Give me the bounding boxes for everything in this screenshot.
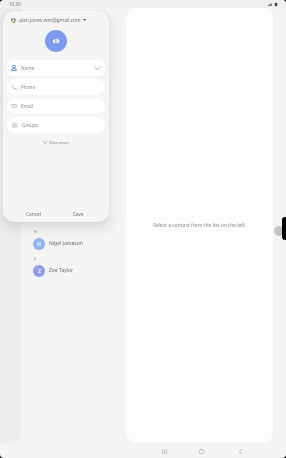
button[interactable]: Groups	[7, 117, 105, 133]
staticText: alan.jones.wm@gmail.com	[19, 17, 81, 24]
staticText: 10.30	[9, 1, 21, 7]
button[interactable]: alan.jones.wm@gmail.com	[3, 11, 109, 29]
button[interactable]: Phone	[7, 79, 105, 95]
button[interactable]: Name	[7, 60, 105, 76]
staticText: Phone	[21, 84, 36, 90]
staticText: Save	[73, 211, 84, 218]
staticText: Cancel	[26, 211, 41, 218]
button[interactable]: Back	[228, 444, 252, 458]
button[interactable]: Drag handle	[274, 226, 284, 236]
staticText: N	[37, 241, 41, 248]
button[interactable]: N	[20, 235, 126, 252]
staticText: Z	[34, 256, 37, 261]
button[interactable]: Z	[20, 262, 126, 279]
staticText: N	[34, 229, 37, 234]
staticText: Z	[38, 268, 41, 275]
button[interactable]: Recent apps	[152, 444, 176, 458]
staticText: Select a contact from the list on the le…	[153, 222, 247, 229]
staticText: Groups	[22, 122, 39, 128]
button[interactable]: Email	[7, 98, 105, 114]
button[interactable]: Save	[69, 208, 88, 221]
button[interactable]: Add photo	[45, 30, 67, 52]
button[interactable]: View more	[39, 138, 73, 147]
button[interactable]: Home	[189, 444, 213, 458]
staticText: Zoe Taylor	[49, 267, 74, 274]
staticText: Email	[21, 103, 34, 109]
staticText: Nigel Jameson	[49, 240, 83, 247]
button[interactable]: Cancel	[22, 208, 45, 221]
staticText: Name	[21, 65, 35, 71]
staticText: View more	[49, 140, 69, 145]
